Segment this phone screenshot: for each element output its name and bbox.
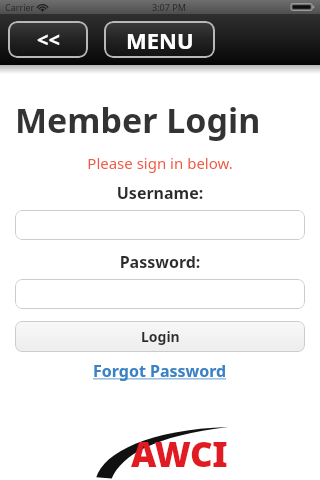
staticText: Username: (0, 182, 320, 204)
button[interactable]: Login (15, 321, 305, 352)
staticText: Login (141, 327, 180, 346)
staticText: Password: (0, 251, 320, 273)
button[interactable]: Menu (104, 21, 215, 58)
button[interactable]: Forgot Password (0, 360, 320, 382)
staticText: AWCI (131, 430, 228, 478)
staticText: Forgot Password (93, 360, 227, 382)
button[interactable]: Back (8, 21, 88, 58)
staticText: MENU (126, 25, 194, 55)
button[interactable] (15, 210, 305, 240)
staticText: Please sign in below. (0, 153, 320, 173)
staticText: << (37, 26, 60, 53)
staticText: Carrier (5, 1, 35, 13)
staticText: 3:07 PM (152, 1, 186, 13)
staticText: Member Login (15, 97, 261, 143)
button[interactable] (15, 279, 305, 309)
